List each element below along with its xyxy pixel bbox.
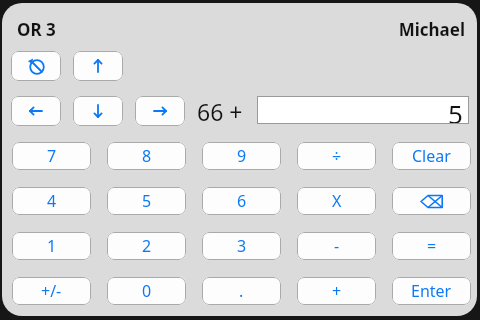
staticText: Michael [398, 18, 465, 41]
button[interactable]: - [297, 232, 376, 260]
button[interactable]: 7 [12, 142, 91, 170]
button[interactable] [73, 51, 123, 81]
button[interactable]: ÷ [297, 142, 376, 170]
button[interactable]: 8 [107, 142, 186, 170]
staticText: X [332, 190, 342, 212]
button[interactable]: 6 [202, 187, 281, 215]
staticText: 2 [142, 235, 152, 257]
button[interactable] [392, 187, 471, 215]
button[interactable]: 1 [12, 232, 91, 260]
staticText: - [334, 235, 340, 257]
staticText: OR 3 [17, 18, 56, 41]
staticText: 0 [142, 280, 152, 302]
button[interactable]: = [392, 232, 471, 260]
button[interactable]: X [297, 187, 376, 215]
button[interactable] [11, 96, 61, 126]
staticText: 1 [47, 235, 57, 257]
button[interactable]: Clear [392, 142, 471, 170]
staticText: 5 [448, 96, 463, 124]
button[interactable]: 3 [202, 232, 281, 260]
staticText: ÷ [332, 145, 342, 167]
staticText: Enter [411, 280, 452, 302]
staticText: 66 + [197, 96, 243, 127]
button[interactable] [135, 96, 185, 126]
staticText: 9 [237, 145, 247, 167]
staticText: 4 [47, 190, 57, 212]
staticText: Clear [412, 145, 451, 167]
staticText: 7 [47, 145, 57, 167]
button[interactable]: 4 [12, 187, 91, 215]
button[interactable]: + [297, 277, 376, 305]
staticText: . [239, 280, 244, 302]
button[interactable]: 5 [107, 187, 186, 215]
button[interactable]: 0 [107, 277, 186, 305]
button[interactable] [11, 51, 61, 81]
button[interactable]: +/- [12, 277, 91, 305]
button[interactable] [73, 96, 123, 126]
staticText: = [427, 235, 437, 257]
staticText: +/- [41, 280, 62, 302]
staticText: 8 [142, 145, 152, 167]
staticText: 5 [142, 190, 152, 212]
staticText: 3 [237, 235, 247, 257]
button[interactable]: 5 [257, 96, 469, 124]
staticText: 6 [237, 190, 247, 212]
button[interactable]: 9 [202, 142, 281, 170]
staticText: + [332, 280, 342, 302]
button[interactable]: . [202, 277, 281, 305]
button[interactable]: 2 [107, 232, 186, 260]
button[interactable]: Enter [392, 277, 471, 305]
